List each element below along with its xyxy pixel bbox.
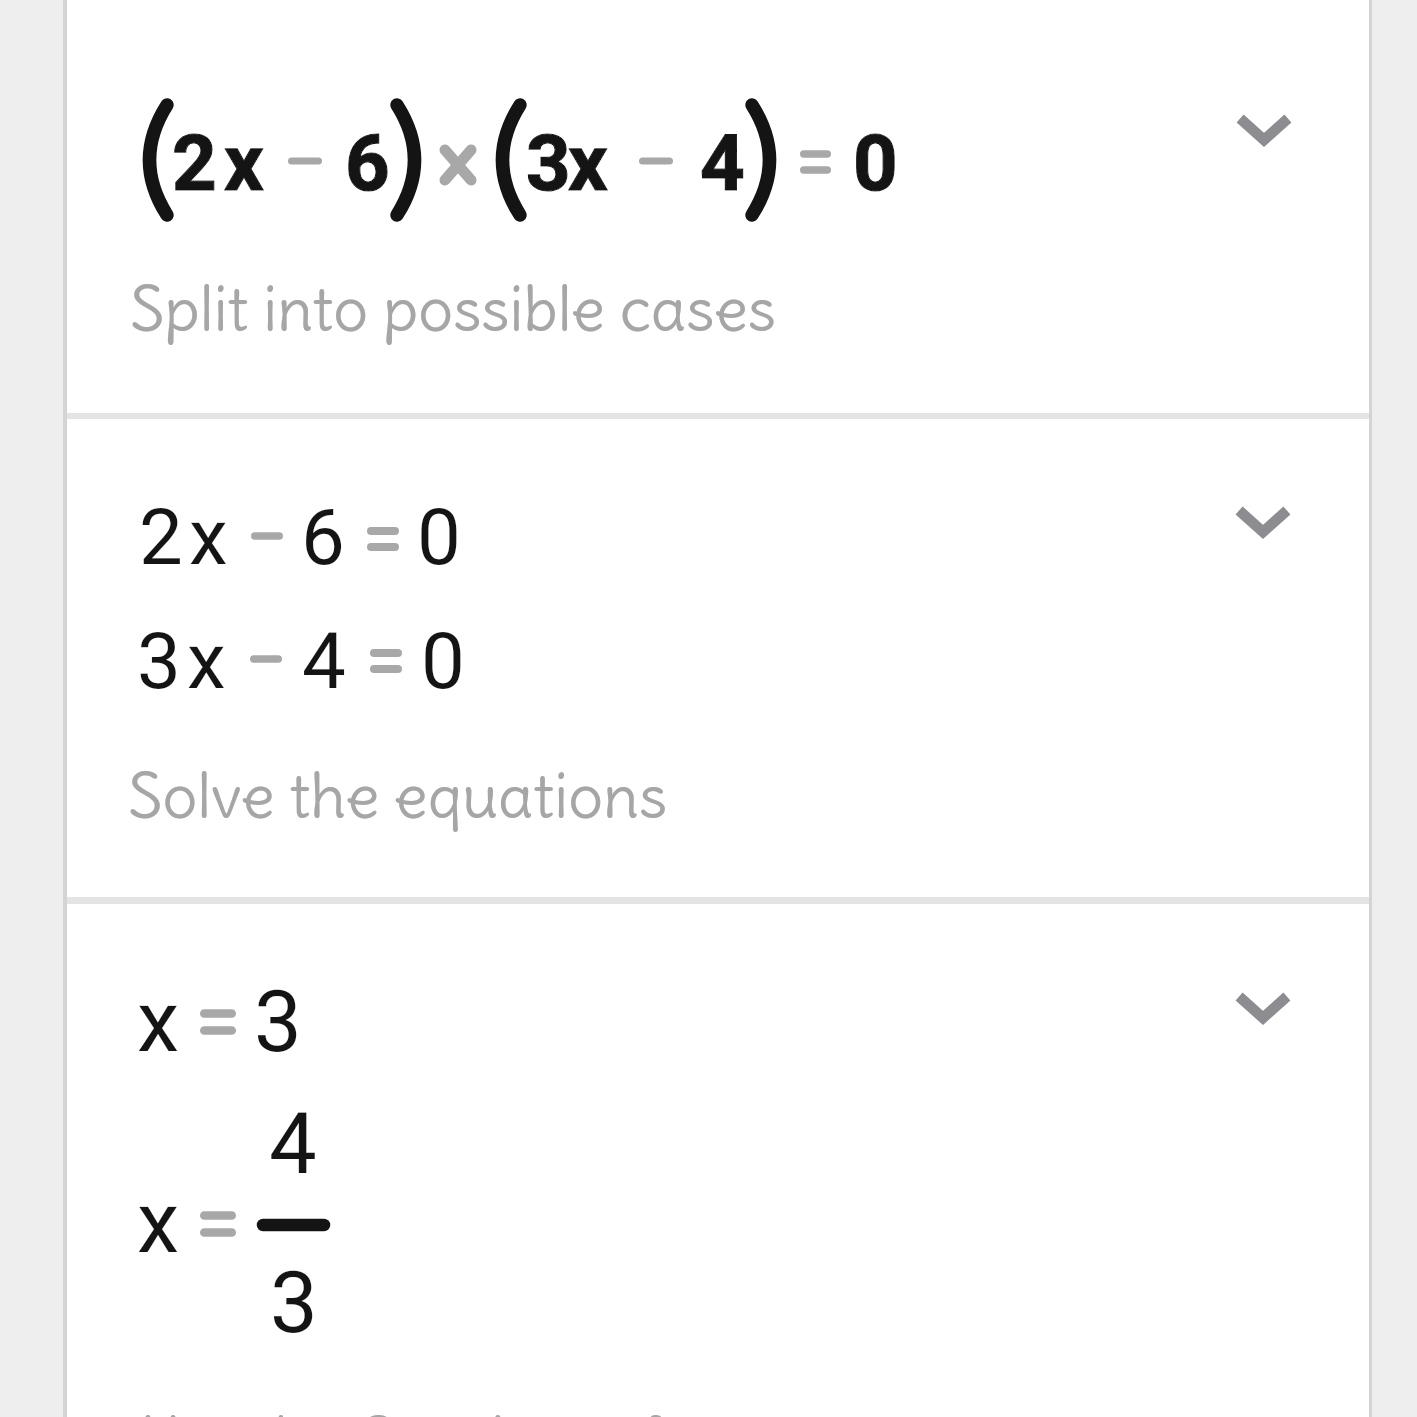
button[interactable] [1218, 478, 1308, 568]
staticText: x [224, 118, 264, 209]
staticText: 3 [526, 118, 571, 209]
staticText: 2 [139, 492, 183, 583]
staticText: x [568, 118, 608, 209]
staticText: 2 [172, 118, 217, 209]
staticText: 4 [269, 1094, 317, 1194]
staticText: 6 [301, 492, 345, 583]
staticText: Use the Quadratic f [140, 1402, 662, 1417]
button[interactable] [67, 904, 1369, 1417]
staticText: x [137, 972, 180, 1072]
staticText: 3 [526, 118, 571, 209]
staticText: 6 [345, 118, 390, 209]
button[interactable] [1218, 964, 1308, 1054]
staticText: x [224, 118, 264, 209]
staticText: x [187, 616, 226, 707]
staticText: x [568, 118, 608, 209]
staticText: 0 [417, 492, 461, 583]
staticText: 2 [172, 118, 217, 209]
staticText: Solve the equations [128, 757, 668, 835]
staticText: 4 [700, 118, 745, 209]
staticText: Split into possible cases [130, 270, 777, 348]
staticText: 0 [853, 118, 898, 209]
staticText: 3 [270, 1253, 318, 1353]
button[interactable] [1219, 86, 1309, 176]
staticText: 3 [254, 972, 302, 1072]
staticText: 0 [853, 118, 898, 209]
staticText: 6 [345, 118, 390, 209]
staticText: x [189, 492, 228, 583]
staticText: 0 [421, 616, 465, 707]
staticText: 3 [137, 616, 181, 707]
button[interactable] [67, 0, 1369, 413]
staticText: x [137, 1173, 180, 1273]
staticText: 4 [302, 616, 346, 707]
button[interactable] [67, 419, 1369, 897]
staticText: 4 [700, 118, 745, 209]
